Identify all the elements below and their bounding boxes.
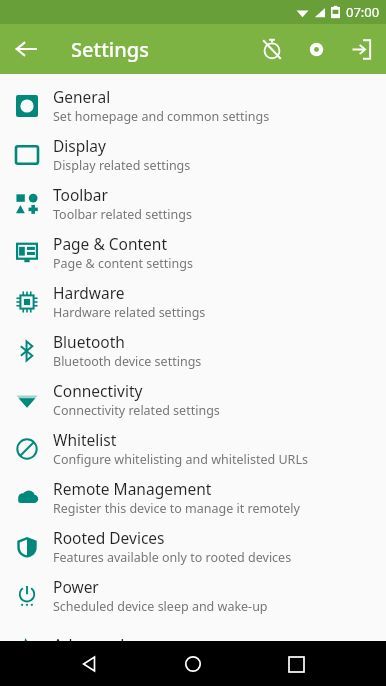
button[interactable]: Whitelist [0,424,386,473]
button[interactable]: Toolbar [0,179,386,228]
staticText: Hardware [53,282,125,303]
staticText: Hardware related settings [53,304,206,321]
staticText: Register this device to manage it remote… [53,500,300,517]
staticText: General [53,86,111,107]
staticText: Set homepage and common settings [53,108,270,125]
staticText: Display related settings [53,157,191,174]
staticText: Scheduled device sleep and wake-up [53,598,268,615]
staticText: Rooted Devices [53,527,165,548]
staticText: Advanced [53,634,125,655]
button[interactable]: Power [0,571,386,620]
button[interactable]: General [0,81,386,130]
button[interactable]: Hardware [0,277,386,326]
button[interactable]: Home [171,642,215,686]
staticText: Page & Content [53,233,168,254]
staticText: Features available only to rooted device… [53,549,292,566]
staticText: 07:00 [346,3,380,21]
button[interactable]: Back [68,642,112,686]
staticText: Display [53,135,106,156]
button[interactable]: Back [6,29,46,69]
button[interactable]: Connectivity [0,375,386,424]
button[interactable]: Remote Management [0,473,386,522]
button[interactable]: Settings [294,27,338,71]
staticText: Toolbar related settings [53,206,192,223]
button[interactable]: Display [0,130,386,179]
staticText: Toolbar [53,184,108,205]
staticText: Connectivity [53,380,143,401]
staticText: Connectivity related settings [53,402,220,419]
button[interactable]: Page & Content [0,228,386,277]
staticText: Whitelist [53,429,117,450]
button[interactable]: Recent apps [274,642,318,686]
staticText: Configure whitelisting and whitelisted U… [53,451,308,468]
staticText: Remote Management [53,478,212,499]
button[interactable]: Timer off [250,27,294,71]
button[interactable]: Bluetooth [0,326,386,375]
staticText: Power [53,576,99,597]
button[interactable]: Exit [338,27,382,71]
staticText: Settings [71,36,149,63]
staticText: Bluetooth device settings [53,353,202,370]
button[interactable]: Advanced [0,620,386,669]
button[interactable]: Rooted Devices [0,522,386,571]
staticText: Page & content settings [53,255,193,272]
staticText: Bluetooth [53,331,125,352]
